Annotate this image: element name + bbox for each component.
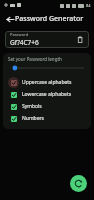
- button[interactable]: Lowercase alphabets: [3, 88, 91, 100]
- staticText: Password: [10, 32, 29, 37]
- button[interactable]: Uppercase alphabets: [3, 76, 91, 88]
- button[interactable]: Generate password: [70, 175, 87, 192]
- button[interactable]: Password length slider: [3, 63, 91, 73]
- staticText: 84: [86, 3, 91, 8]
- button[interactable]: Symbols: [3, 100, 91, 112]
- staticText: Uppercase alphabets: [22, 79, 72, 86]
- button[interactable]: Back: [3, 12, 17, 26]
- button[interactable]: Numbers: [3, 112, 91, 124]
- staticText: Gf?4C7+6: [10, 38, 39, 47]
- button[interactable]: Password: [5, 31, 89, 48]
- staticText: Password Generator: [15, 14, 84, 24]
- staticText: Lowercase alphabets: [22, 91, 72, 98]
- staticText: Numbers: [22, 115, 44, 122]
- staticText: Symbols: [22, 103, 42, 110]
- button[interactable]: Copy password: [74, 34, 85, 45]
- staticText: Set your Password length: [8, 56, 62, 62]
